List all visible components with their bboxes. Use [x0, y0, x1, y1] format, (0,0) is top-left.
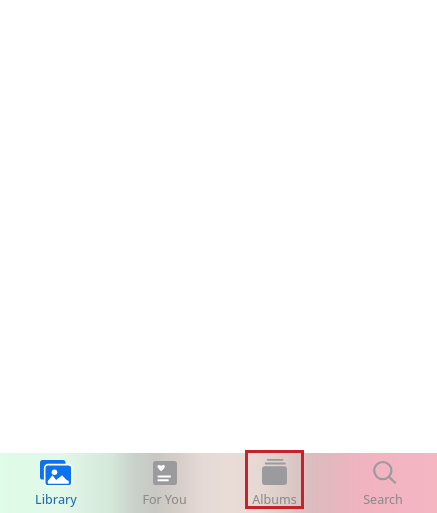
- staticText: Search: [363, 491, 403, 508]
- staticText: For You: [142, 491, 187, 508]
- staticText: Library: [35, 491, 77, 508]
- staticText: Albums: [252, 491, 297, 508]
- button[interactable]: Albums: [245, 450, 304, 509]
- button[interactable]: Search: [353, 450, 412, 509]
- button[interactable]: Library: [26, 450, 85, 509]
- button[interactable]: For You: [135, 450, 194, 509]
